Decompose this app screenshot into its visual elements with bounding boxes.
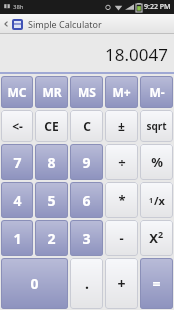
button[interactable]: = <box>140 258 173 309</box>
button[interactable]: M+ <box>105 76 138 108</box>
staticText: 38h <box>13 3 24 11</box>
staticText: ÷ <box>118 153 126 171</box>
button[interactable]: . <box>70 258 103 309</box>
button[interactable]: 5 <box>35 182 68 218</box>
staticText: X <box>149 229 158 247</box>
staticText: sqrt <box>146 119 167 133</box>
staticText: 1 <box>149 196 154 206</box>
button[interactable]: MC <box>1 76 33 108</box>
staticText: 9:22 PM <box>144 2 171 12</box>
button[interactable]: * <box>105 182 138 218</box>
staticText: . <box>85 274 89 293</box>
staticText: MS <box>78 84 96 100</box>
staticText: M+ <box>112 84 131 100</box>
staticText: Simple Calculator <box>28 18 102 30</box>
button[interactable]: CE <box>35 110 68 142</box>
button[interactable]: ± <box>105 110 138 142</box>
button[interactable]: - <box>105 220 138 256</box>
button[interactable]: 8 <box>35 144 68 180</box>
button[interactable]: 2 <box>35 220 68 256</box>
staticText: 5 <box>47 191 56 210</box>
staticText: + <box>117 274 126 293</box>
staticText: 8 <box>47 153 56 172</box>
staticText: 1 <box>13 229 22 248</box>
staticText: = <box>152 274 161 293</box>
staticText: - <box>119 229 124 247</box>
staticText: * <box>118 191 126 209</box>
button[interactable]: 3 <box>70 220 103 256</box>
button[interactable]: + <box>105 258 138 309</box>
button[interactable]: 4 <box>1 182 33 218</box>
button[interactable]: 0 <box>1 258 68 309</box>
staticText: /x <box>154 193 165 208</box>
staticText: 4 <box>13 191 22 210</box>
staticText: 18.0047 <box>105 43 168 66</box>
button[interactable]: Up <box>3 14 102 34</box>
button[interactable]: MR <box>35 76 68 108</box>
button[interactable]: M- <box>140 76 173 108</box>
staticText: <- <box>12 118 23 134</box>
staticText: C <box>83 118 91 134</box>
staticText: % <box>151 153 163 171</box>
staticText: ± <box>118 118 125 134</box>
button[interactable]: sqrt <box>140 110 173 142</box>
staticText: 2 <box>158 228 164 240</box>
button[interactable]: 1 <box>140 182 173 218</box>
staticText: MR <box>42 84 62 100</box>
button[interactable]: ÷ <box>105 144 138 180</box>
button[interactable]: 6 <box>70 182 103 218</box>
staticText: 9 <box>82 153 91 172</box>
staticText: 0 <box>30 274 39 293</box>
button[interactable]: MS <box>70 76 103 108</box>
staticText: 2 <box>47 229 56 248</box>
staticText: 6 <box>82 191 91 210</box>
button[interactable]: C <box>70 110 103 142</box>
button[interactable]: 1 <box>1 220 33 256</box>
staticText: M- <box>149 84 165 100</box>
button[interactable]: <- <box>1 110 33 142</box>
button[interactable]: X <box>140 220 173 256</box>
staticText: MC <box>7 84 27 100</box>
button[interactable]: 7 <box>1 144 33 180</box>
button[interactable]: 9 <box>70 144 103 180</box>
staticText: 7 <box>13 153 22 172</box>
staticText: 3 <box>82 229 91 248</box>
staticText: CE <box>44 118 59 134</box>
button[interactable]: % <box>140 144 173 180</box>
